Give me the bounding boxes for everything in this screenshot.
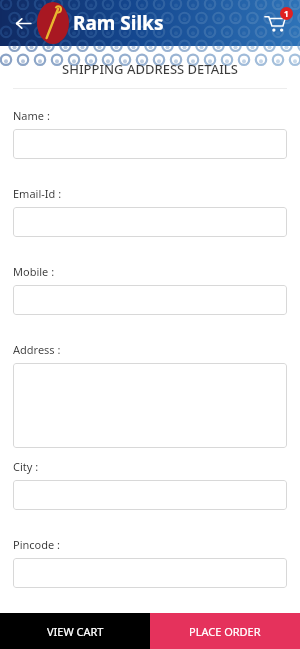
button[interactable]: Address : (13, 363, 287, 448)
button[interactable]: VIEW CART (0, 613, 150, 649)
button[interactable]: City : (13, 480, 287, 510)
staticText: 1 (284, 8, 289, 19)
button[interactable]: PLACE ORDER (150, 613, 300, 649)
staticText: Email-Id : (13, 186, 62, 201)
staticText: Address : (13, 342, 61, 357)
staticText: Pincode : (13, 537, 61, 552)
staticText: Name : (13, 108, 50, 123)
staticText: City : (13, 459, 39, 474)
button[interactable]: Cart (256, 4, 294, 42)
button[interactable]: Email-Id : (13, 207, 287, 237)
button[interactable]: Name : (13, 129, 287, 159)
staticText: PLACE ORDER (189, 624, 261, 639)
staticText: Ram Silks (73, 10, 164, 36)
button[interactable]: Back (6, 6, 40, 40)
staticText: VIEW CART (47, 624, 104, 639)
staticText: Mobile : (13, 264, 55, 279)
button[interactable]: Pincode : (13, 558, 287, 588)
staticText: SHIPPING ADDRESS DETAILS (0, 60, 300, 78)
button[interactable]: Mobile : (13, 285, 287, 315)
